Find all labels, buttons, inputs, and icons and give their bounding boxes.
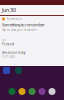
staticText: 9:00 AM [2,55,14,59]
staticText: Reminders [6,17,21,21]
staticText: Tap to view your reminder [2,28,37,32]
staticText: Snooze [11,67,21,71]
staticText: Something to remember [2,22,45,27]
staticText: Scheduled today [2,51,25,54]
staticText: LIST [2,38,6,41]
staticText: Jun 30 [2,6,16,14]
button[interactable]: Snooze [1,67,31,72]
staticText: Personal [2,42,14,46]
